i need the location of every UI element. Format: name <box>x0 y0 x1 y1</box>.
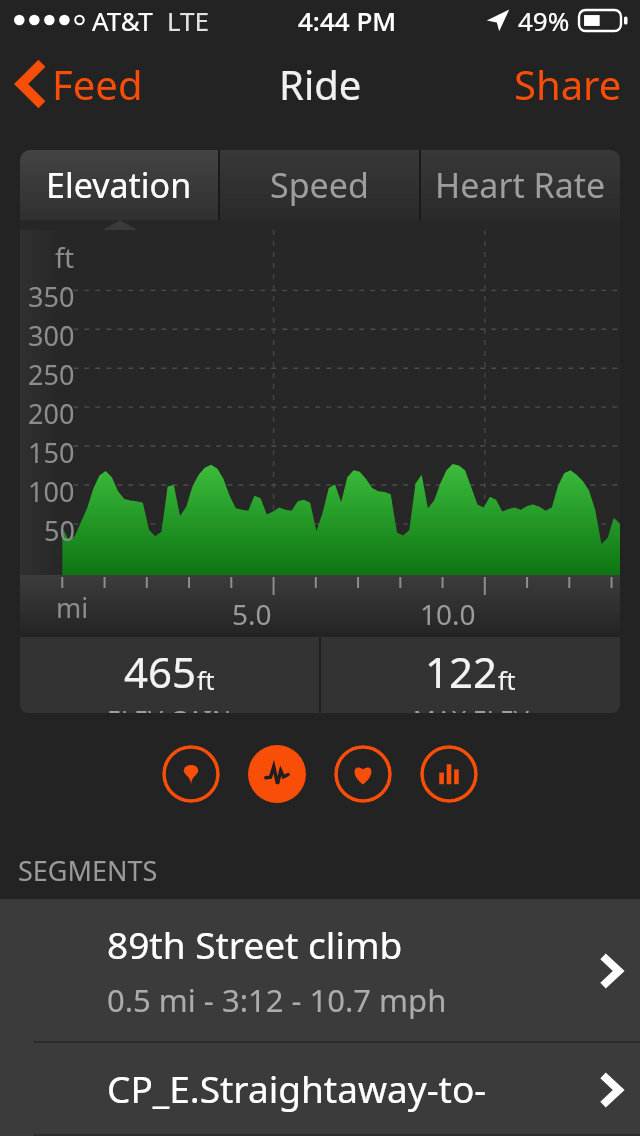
staticText: ft <box>197 663 215 697</box>
staticText: 89th Street climb <box>107 919 403 969</box>
button[interactable]: Feed <box>10 49 151 119</box>
staticText: AT&T <box>92 3 153 38</box>
staticText: ft <box>55 239 75 276</box>
staticText: 200 <box>28 395 75 432</box>
staticText: Feed <box>52 57 143 111</box>
staticText: 0.5 mi - 3:12 - 10.7 mph <box>107 979 447 1021</box>
staticText: mi <box>56 589 89 626</box>
staticText: 150 <box>28 434 75 471</box>
staticText: Ride <box>279 57 362 111</box>
staticText: 350 <box>28 278 75 315</box>
button[interactable]: Heart Rate <box>334 745 392 803</box>
staticText: 122 <box>425 643 498 700</box>
button[interactable]: 89th Street climb <box>0 899 640 1043</box>
staticText: Elevation <box>46 162 192 208</box>
staticText: CP_E.Straightaway-to-Downhill <box>107 1063 584 1114</box>
staticText: 465 <box>124 643 197 700</box>
staticText: Share <box>514 57 622 111</box>
button[interactable]: Map <box>162 745 220 803</box>
staticText: 5.0 <box>232 595 272 633</box>
staticText: 300 <box>28 317 75 354</box>
button[interactable]: 122 <box>321 637 620 713</box>
staticText: 49% <box>518 3 570 38</box>
staticText: 4:44 PM <box>298 3 397 38</box>
button[interactable]: Elevation <box>20 150 218 220</box>
staticText: Heart Rate <box>435 162 606 208</box>
staticText: ELEV GAIN <box>107 702 232 713</box>
staticText: LTE <box>167 3 210 38</box>
button[interactable]: Analysis <box>248 745 306 803</box>
button[interactable]: Share <box>506 45 630 123</box>
staticText: MAX ELEV <box>413 702 529 713</box>
button[interactable]: 465 <box>20 637 319 713</box>
button[interactable]: CP_E.Straightaway-to-Downhill <box>0 1043 640 1136</box>
staticText: Speed <box>270 162 369 208</box>
button[interactable]: Heart Rate <box>421 150 620 220</box>
staticText: SEGMENTS <box>18 852 158 889</box>
staticText: 250 <box>28 356 75 393</box>
button[interactable]: Speed <box>220 150 419 220</box>
staticText: ft <box>498 663 516 697</box>
staticText: 50 <box>44 512 75 549</box>
staticText: 100 <box>28 473 75 510</box>
staticText: 10.0 <box>420 595 476 633</box>
button[interactable]: Stats <box>420 745 478 803</box>
